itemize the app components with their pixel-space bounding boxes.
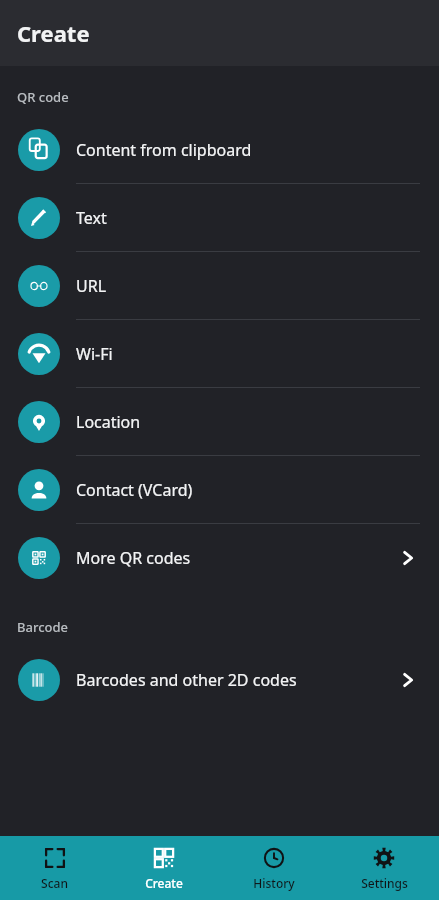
staticText: History	[253, 875, 295, 891]
button[interactable]: URL	[0, 252, 439, 320]
button[interactable]: Barcodes and other 2D codes	[0, 646, 439, 714]
staticText: Create	[17, 18, 90, 48]
button[interactable]: Settings	[329, 836, 439, 900]
staticText: Text	[76, 207, 107, 229]
button[interactable]: Create	[109, 836, 219, 900]
button[interactable]: Text	[0, 184, 439, 252]
button[interactable]: History	[219, 836, 329, 900]
staticText: Scan	[41, 875, 68, 891]
button[interactable]: Content from clipboard	[0, 116, 439, 184]
button[interactable]: Location	[0, 388, 439, 456]
staticText: Barcodes and other 2D codes	[76, 669, 297, 691]
staticText: Barcode	[17, 618, 69, 636]
staticText: Settings	[361, 875, 408, 891]
staticText: URL	[76, 275, 107, 297]
staticText: More QR codes	[76, 547, 191, 569]
staticText: Contact (VCard)	[76, 479, 193, 501]
staticText: QR code	[17, 88, 69, 106]
button[interactable]: Scan	[0, 836, 109, 900]
staticText: Location	[76, 411, 141, 433]
button[interactable]: Wi-Fi	[0, 320, 439, 388]
staticText: Wi-Fi	[76, 343, 113, 365]
button[interactable]: Contact (VCard)	[0, 456, 439, 524]
staticText: Create	[145, 875, 183, 891]
button[interactable]: More QR codes	[0, 524, 439, 592]
staticText: Content from clipboard	[76, 139, 252, 161]
